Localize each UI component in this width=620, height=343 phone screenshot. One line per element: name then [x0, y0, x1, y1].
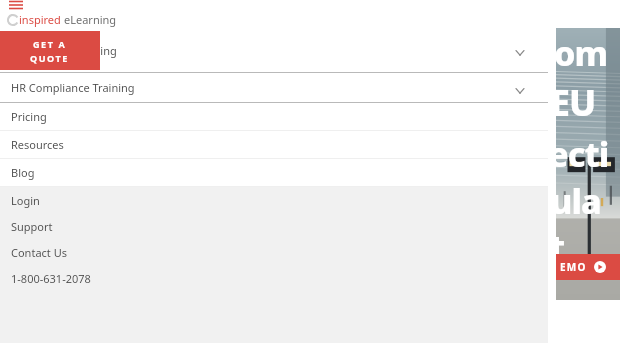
staticText: EMO: [560, 260, 587, 274]
staticText: Support: [11, 219, 53, 234]
button[interactable]: Expand: [513, 43, 527, 57]
button[interactable]: HR Compliance Training: [0, 73, 548, 102]
button[interactable]: Pricing: [0, 103, 548, 130]
staticText: Contact Us: [11, 245, 67, 260]
staticText: om: [554, 30, 607, 76]
staticText: ulat: [550, 178, 614, 270]
staticText: Compliance Training: [11, 43, 117, 58]
staticText: QUOTE: [30, 52, 70, 64]
button[interactable]: 1-800-631-2078: [0, 265, 548, 291]
staticText: GET A: [33, 38, 67, 50]
staticText: Resources: [11, 137, 64, 152]
button[interactable]: Expand: [513, 81, 527, 95]
staticText: Blog: [11, 165, 35, 180]
button[interactable]: GET A: [0, 31, 100, 70]
staticText: HR Compliance Training: [11, 80, 135, 95]
button[interactable]: Contact Us: [0, 239, 548, 265]
staticText: Pricing: [11, 109, 47, 124]
staticText: eLearning: [64, 12, 117, 27]
button[interactable]: Login: [0, 187, 548, 213]
staticText: inspired: [19, 12, 64, 27]
staticText: ecti: [548, 131, 609, 177]
staticText: 1-800-631-2078: [11, 271, 91, 286]
button[interactable]: EMO: [556, 254, 620, 280]
staticText: EU: [550, 78, 596, 127]
button[interactable]: Support: [0, 213, 548, 239]
staticText: Login: [11, 193, 40, 208]
button[interactable]: Compliance Training: [0, 28, 548, 72]
button[interactable]: Resources: [0, 131, 548, 158]
button[interactable]: Blog: [0, 159, 548, 186]
